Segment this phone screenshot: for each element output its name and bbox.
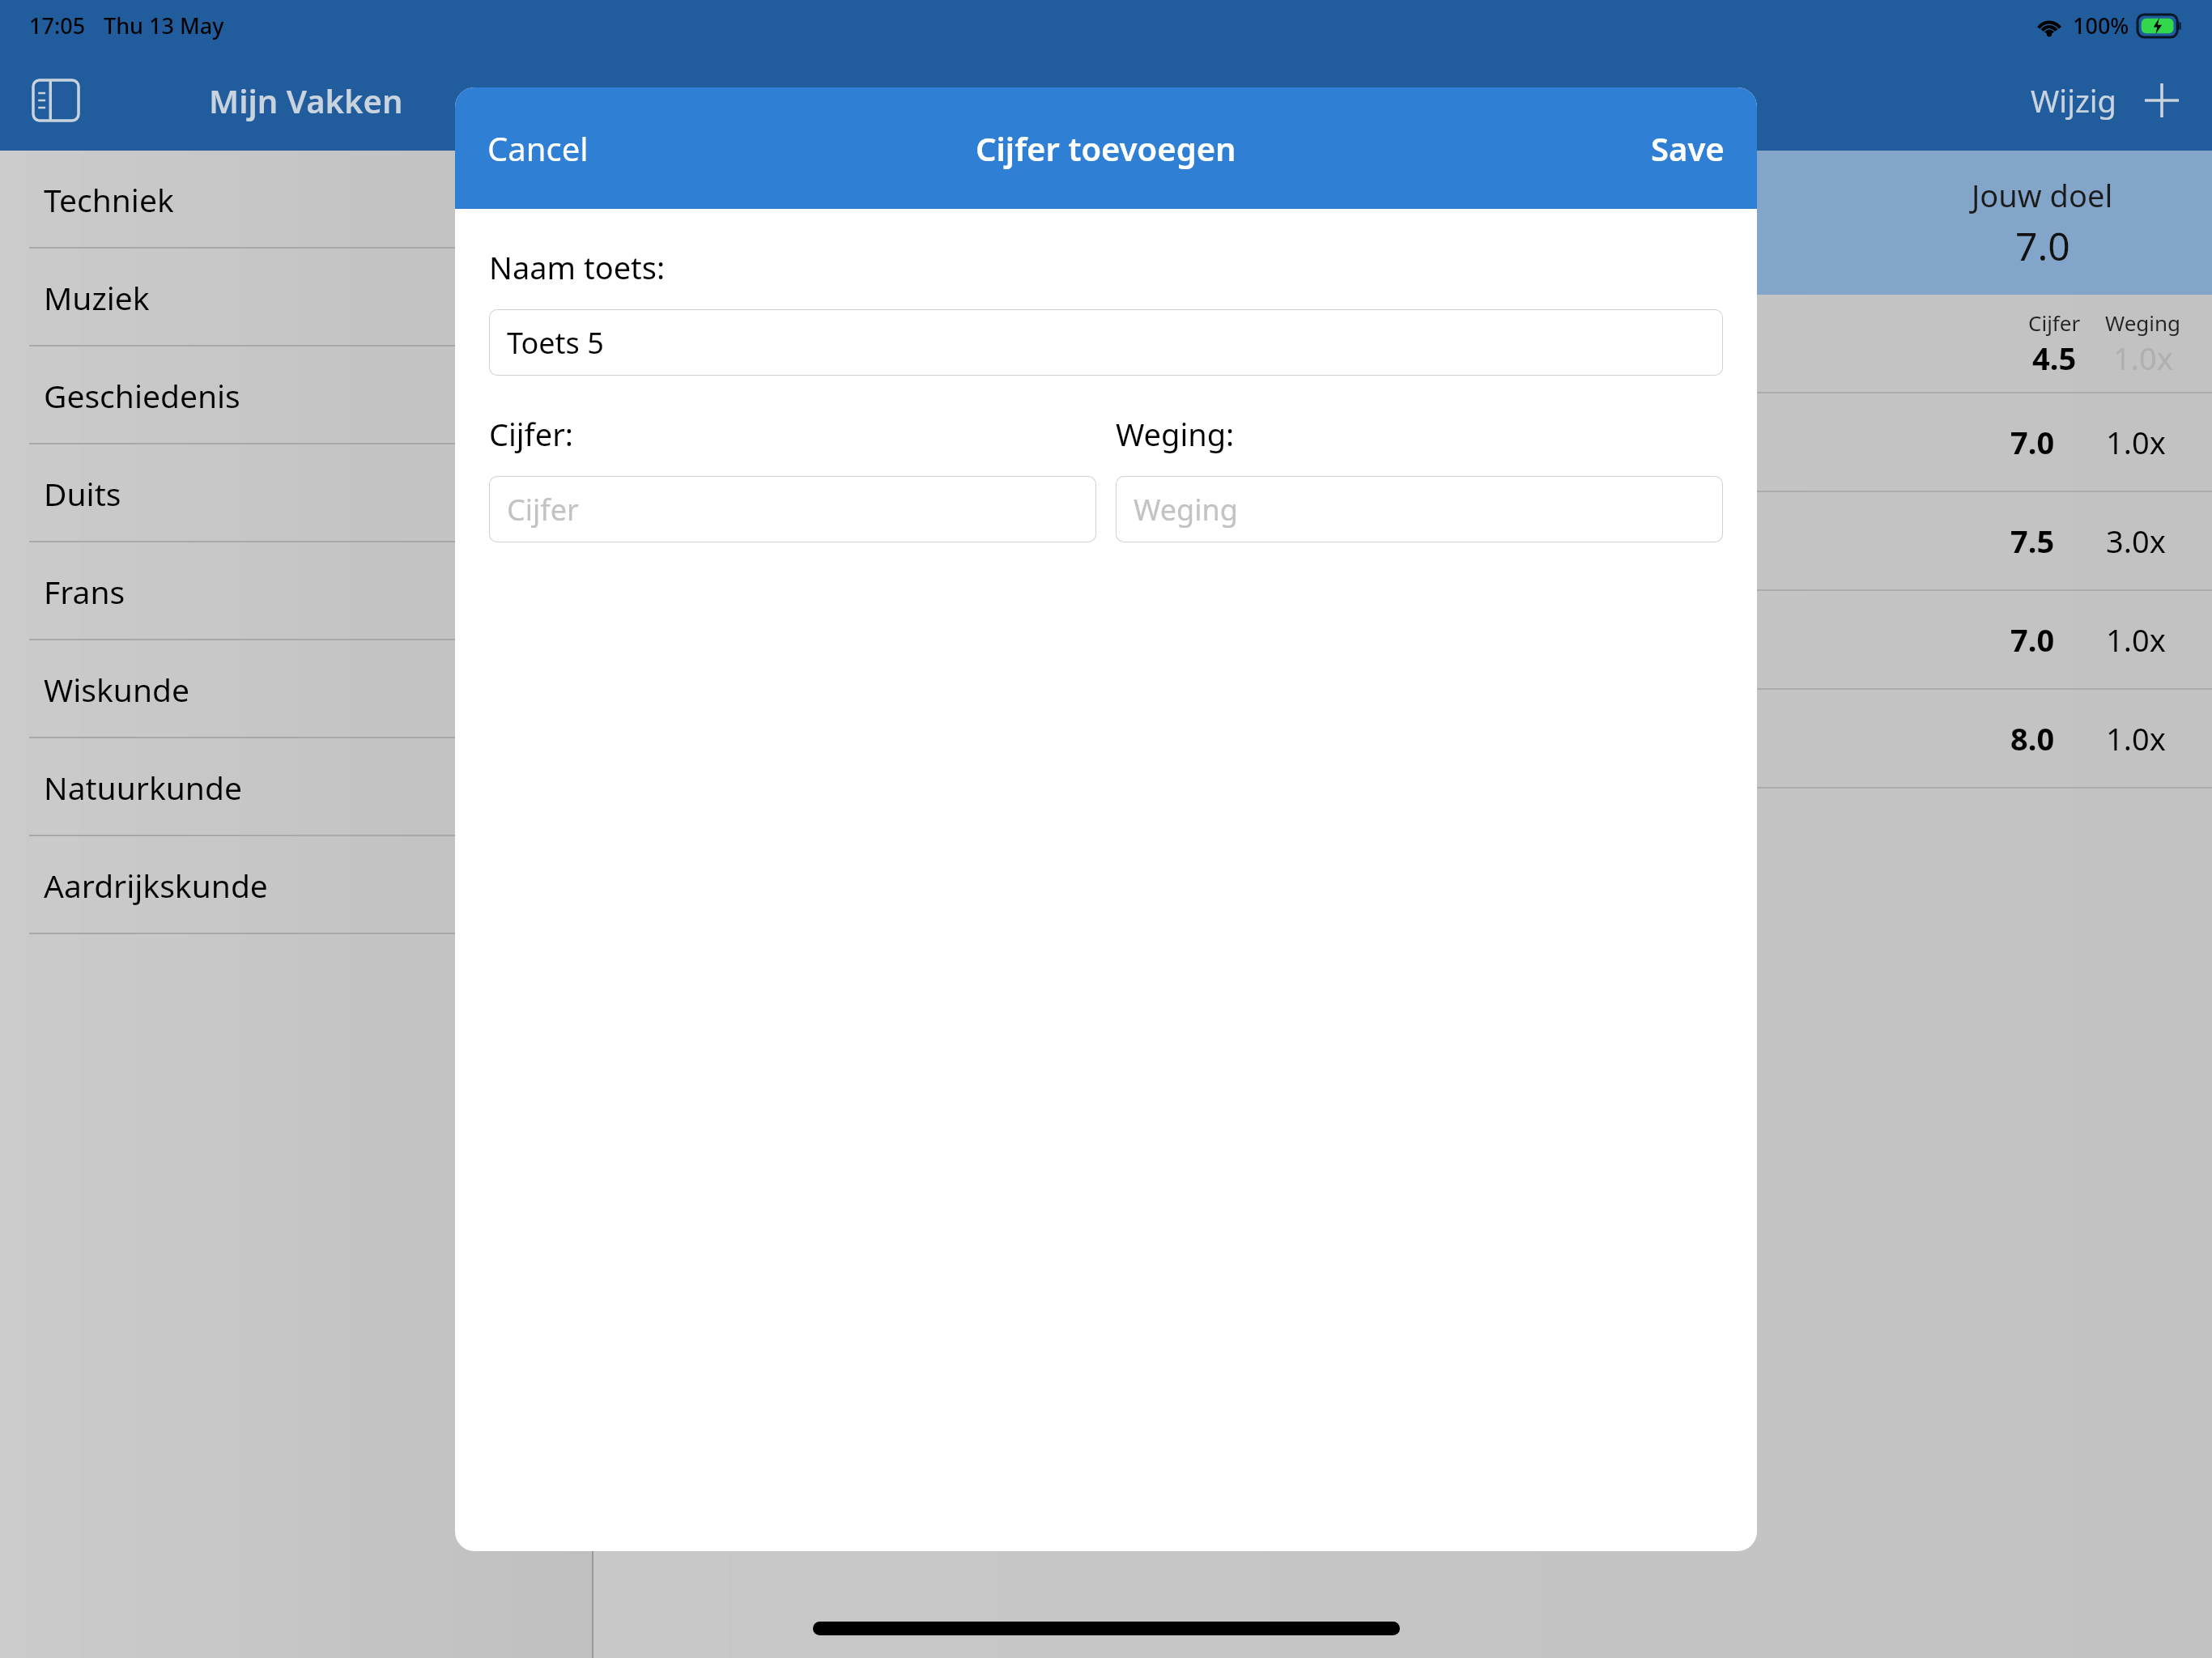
- staticText: Naam toets:: [489, 246, 666, 288]
- staticText: Duits: [44, 472, 121, 515]
- button[interactable]: 7.0: [593, 591, 2212, 688]
- staticText: 100%: [2073, 11, 2129, 40]
- staticText: 1.0x: [2106, 421, 2166, 463]
- button[interactable]: 7.5: [593, 492, 2212, 589]
- staticText: Wiskunde: [44, 668, 190, 711]
- button[interactable]: Wijzig: [2024, 73, 2123, 128]
- staticText: Aardrijkskunde: [44, 864, 268, 907]
- staticText: Weging: [2105, 308, 2181, 337]
- staticText: Cijfer toevoegen: [976, 126, 1236, 170]
- button[interactable]: Cijfer: [489, 476, 1096, 542]
- button[interactable]: Geschiedenis: [0, 346, 592, 444]
- button[interactable]: Aardrijkskunde: [0, 836, 592, 934]
- button[interactable]: Toets 5: [489, 309, 1723, 376]
- staticText: Toets 5: [507, 323, 604, 363]
- staticText: 7.0: [2010, 421, 2055, 463]
- staticText: Techniek: [44, 178, 174, 221]
- button[interactable]: Cijfer: [593, 295, 2212, 392]
- staticText: 8.0: [2010, 717, 2055, 759]
- staticText: 4.5: [2032, 337, 2077, 379]
- staticText: Weging: [1134, 490, 1238, 529]
- button[interactable]: Add: [2138, 76, 2186, 125]
- staticText: Geschiedenis: [44, 374, 240, 417]
- staticText: Mijn Vakken: [209, 79, 403, 122]
- staticText: Jouw doel: [1972, 174, 2113, 216]
- staticText: 7.0: [2010, 619, 2055, 661]
- staticText: 3.0x: [2106, 520, 2166, 562]
- staticText: 1.0x: [2106, 619, 2166, 661]
- staticText: Muziek: [44, 276, 150, 319]
- staticText: Wijzig: [2031, 79, 2116, 121]
- button[interactable]: Weging: [1116, 476, 1723, 542]
- button[interactable]: Jouw doel: [593, 151, 2212, 295]
- button[interactable]: Natuurkunde: [0, 738, 592, 836]
- staticText: Cancel: [487, 126, 589, 170]
- button[interactable]: Duits: [0, 444, 592, 542]
- staticText: 7.0: [2015, 219, 2070, 272]
- button[interactable]: Cancel: [473, 115, 603, 181]
- button[interactable]: Techniek: [0, 151, 592, 249]
- staticText: 7.5: [2010, 520, 2055, 562]
- button[interactable]: Frans: [0, 542, 592, 640]
- button[interactable]: Wiskunde: [0, 640, 592, 738]
- staticText: 1.0x: [2113, 337, 2173, 379]
- button[interactable]: 8.0: [593, 690, 2212, 787]
- staticText: Thu 13 May: [104, 11, 224, 40]
- button[interactable]: Save: [1636, 115, 1739, 181]
- button[interactable]: Toggle sidebar: [24, 69, 87, 132]
- staticText: Weging:: [1116, 413, 1723, 455]
- button[interactable]: 7.0: [593, 393, 2212, 491]
- button[interactable]: Muziek: [0, 249, 592, 346]
- staticText: Cijfer: [507, 490, 579, 529]
- staticText: Frans: [44, 570, 125, 613]
- staticText: Cijfer: [2028, 308, 2081, 337]
- staticText: 1.0x: [2106, 717, 2166, 759]
- staticText: 17:05: [29, 11, 86, 40]
- staticText: Cijfer:: [489, 413, 1096, 455]
- staticText: Natuurkunde: [44, 766, 242, 809]
- staticText: Save: [1651, 126, 1725, 170]
